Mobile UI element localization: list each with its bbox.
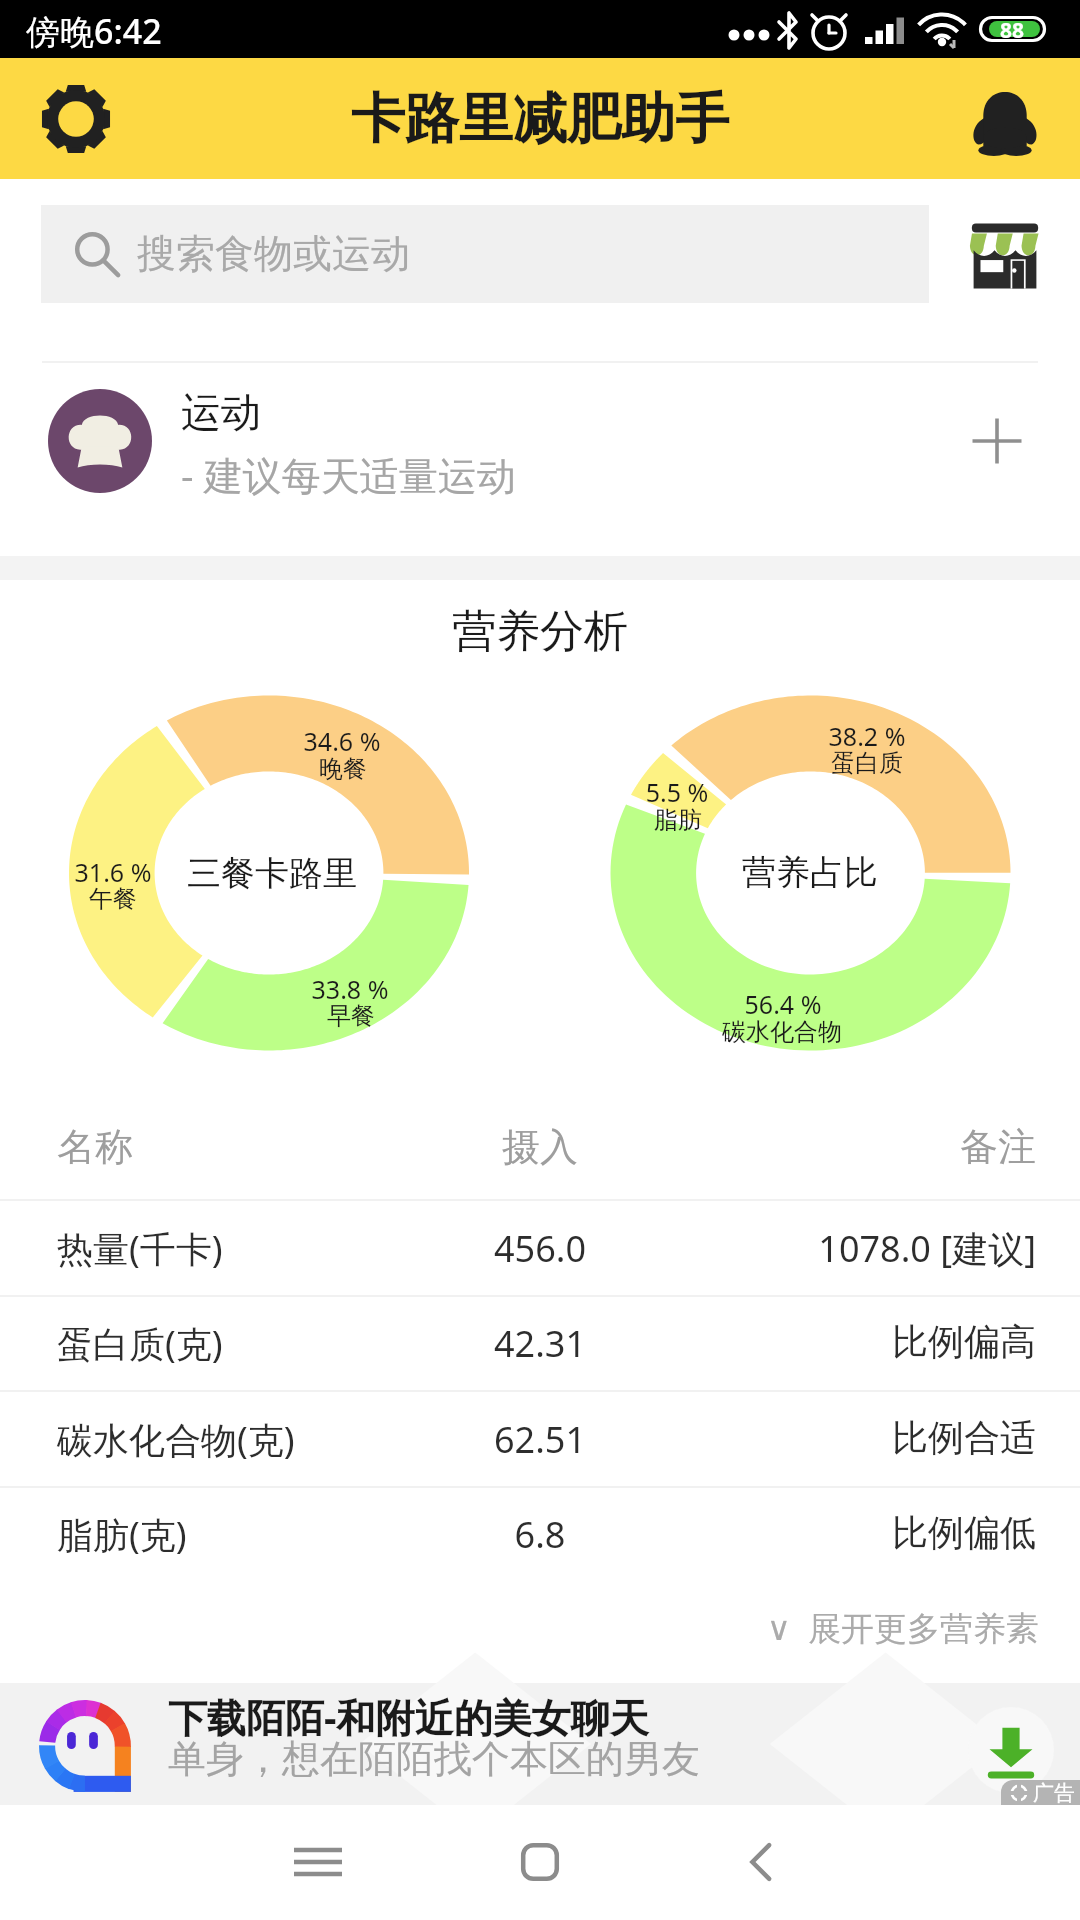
staticText: 34.6 % — [192, 724, 492, 758]
staticText: 碳水化合物 — [632, 1017, 932, 1047]
button[interactable] — [0, 1297, 1080, 1391]
staticText: 脂肪(克) — [57, 1510, 187, 1559]
staticText: 营养分析 — [140, 604, 940, 659]
staticText: 38.2 % — [717, 719, 1017, 753]
staticText: 晚餐 — [193, 754, 493, 784]
button[interactable] — [0, 364, 1080, 556]
staticText: ∨ 展开更多营养素 — [439, 1605, 1039, 1650]
staticText: 56.4 % — [633, 987, 933, 1021]
staticText: 蛋白质 — [717, 748, 1017, 778]
button[interactable]: Home — [510, 1832, 570, 1892]
staticText: 搜索食物或运动 — [137, 229, 410, 278]
button[interactable]: 下载陌陌-和附近的美女聊天 — [0, 1683, 1080, 1805]
button[interactable]: Settings — [36, 82, 116, 156]
staticText: 傍晚6:42 — [26, 8, 162, 54]
staticText: 运动 — [181, 387, 261, 437]
button[interactable]: Store — [962, 216, 1048, 294]
staticText: 456.0 — [140, 1224, 940, 1273]
staticText: 摄入 — [140, 1123, 940, 1171]
button[interactable]: Back — [732, 1832, 792, 1892]
staticText: 5.5 % — [527, 775, 827, 809]
staticText: 广告 — [1033, 1780, 1075, 1805]
staticText: 脂肪 — [528, 805, 828, 835]
staticText: 比例偏低 — [436, 1510, 1036, 1555]
staticText: 1078.0 [建议] — [436, 1224, 1036, 1273]
staticText: 午餐 — [0, 884, 263, 914]
button[interactable]: Profile — [970, 84, 1040, 156]
staticText: 早餐 — [201, 1001, 501, 1031]
staticText: 碳水化合物(克) — [57, 1415, 295, 1464]
button[interactable]: Download — [968, 1707, 1054, 1793]
staticText: 热量(千卡) — [57, 1224, 223, 1273]
staticText: 6.8 — [140, 1510, 940, 1559]
staticText: 42.31 — [140, 1319, 940, 1368]
button[interactable] — [0, 1488, 1080, 1582]
staticText: 卡路里减肥助手 — [140, 85, 940, 153]
button[interactable]: Add exercise — [957, 401, 1037, 481]
staticText: 营养占比 — [410, 851, 1080, 894]
staticText: 三餐卡路里 — [0, 852, 672, 895]
staticText: 31.6 % — [0, 855, 263, 889]
staticText: 33.8 % — [200, 972, 500, 1006]
button[interactable]: 搜索食物或运动 — [41, 205, 929, 303]
staticText: 名称 — [57, 1123, 133, 1171]
staticText: 88 — [1000, 16, 1025, 42]
staticText: 62.51 — [140, 1415, 940, 1464]
staticText: 比例合适 — [436, 1415, 1036, 1460]
button[interactable] — [0, 1201, 1080, 1295]
button[interactable]: Recents — [288, 1832, 348, 1892]
staticText: 蛋白质(克) — [57, 1319, 223, 1368]
staticText: 下载陌陌-和附近的美女聊天 — [168, 1690, 649, 1743]
button[interactable] — [0, 1392, 1080, 1486]
staticText: 单身，想在陌陌找个本区的男友 — [168, 1735, 700, 1783]
staticText: - 建议每天适量运动 — [181, 448, 516, 501]
staticText: 比例偏高 — [436, 1319, 1036, 1364]
button[interactable] — [752, 1588, 1048, 1664]
staticText: 备注 — [436, 1123, 1036, 1171]
